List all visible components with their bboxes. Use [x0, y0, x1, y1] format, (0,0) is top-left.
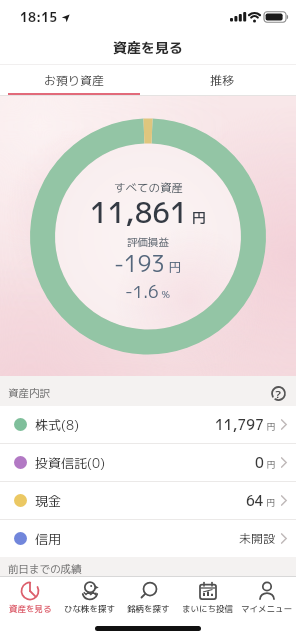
button[interactable]: お預り資産 — [0, 64, 148, 96]
staticText: 投資信託(0) — [35, 454, 106, 472]
staticText: -1.6 % — [125, 280, 171, 304]
button[interactable]: 資産を見る — [0, 577, 60, 621]
staticText: 評価損益 — [127, 235, 169, 250]
staticText: 0 円 — [255, 453, 276, 473]
staticText: 推移 — [210, 72, 235, 89]
staticText: 64 円 — [246, 491, 276, 511]
staticText: 資産を見る — [9, 603, 52, 615]
button[interactable]: ? — [271, 386, 286, 401]
button[interactable]: ひな株を探す — [60, 577, 119, 621]
button[interactable]: 信用 — [0, 520, 296, 557]
staticText: 18:15 — [20, 9, 58, 26]
staticText: 前日までの成績 — [8, 562, 82, 576]
staticText: ひな株を探す — [64, 603, 116, 615]
staticText: すべての資産 — [114, 180, 183, 196]
staticText: 11,797 円 — [215, 415, 276, 435]
staticText: 資産を見る — [113, 38, 183, 58]
button[interactable]: 推移 — [148, 64, 296, 96]
staticText: お預り資産 — [44, 72, 105, 89]
staticText: 信用 — [35, 530, 62, 548]
staticText: 銘柄を探す — [127, 603, 170, 615]
staticText: マイメニュー — [241, 603, 293, 615]
button[interactable]: まいにち投信 — [178, 577, 237, 621]
button[interactable]: 現金 — [0, 482, 296, 519]
staticText: 株式(8) — [35, 416, 80, 434]
button[interactable]: 銘柄を探す — [119, 577, 178, 621]
staticText: 現金 — [35, 492, 62, 510]
staticText: 11,861 円 — [90, 193, 207, 232]
staticText: ? — [275, 387, 282, 401]
staticText: 資産内訳 — [8, 386, 50, 401]
button[interactable]: マイメニュー — [237, 577, 296, 621]
button[interactable]: 投資信託(0) — [0, 444, 296, 481]
button[interactable]: 株式(8) — [0, 406, 296, 443]
staticText: まいにち投信 — [182, 603, 234, 615]
staticText: -193 円 — [114, 248, 182, 279]
staticText: 未開設 — [239, 530, 276, 547]
